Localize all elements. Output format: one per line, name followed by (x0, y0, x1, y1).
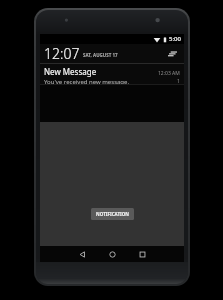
staticText: New Message (44, 66, 97, 77)
staticText: You've received new message. (44, 78, 130, 84)
staticText: 12:07 (44, 44, 80, 63)
button[interactable]: Quick settings (166, 48, 178, 60)
button[interactable]: Back (67, 246, 97, 262)
button[interactable]: NOTIFICATION (91, 208, 134, 220)
button[interactable]: Recent apps (127, 246, 157, 262)
staticText: NOTIFICATION (96, 211, 129, 217)
button[interactable]: New Message (40, 64, 184, 84)
staticText: SAT, AUGUST 17 (83, 52, 118, 58)
button[interactable]: Home (97, 246, 127, 262)
staticText: 12:03 AM (158, 70, 180, 77)
staticText: 1 (177, 78, 180, 84)
staticText: 5:00 (169, 35, 181, 43)
